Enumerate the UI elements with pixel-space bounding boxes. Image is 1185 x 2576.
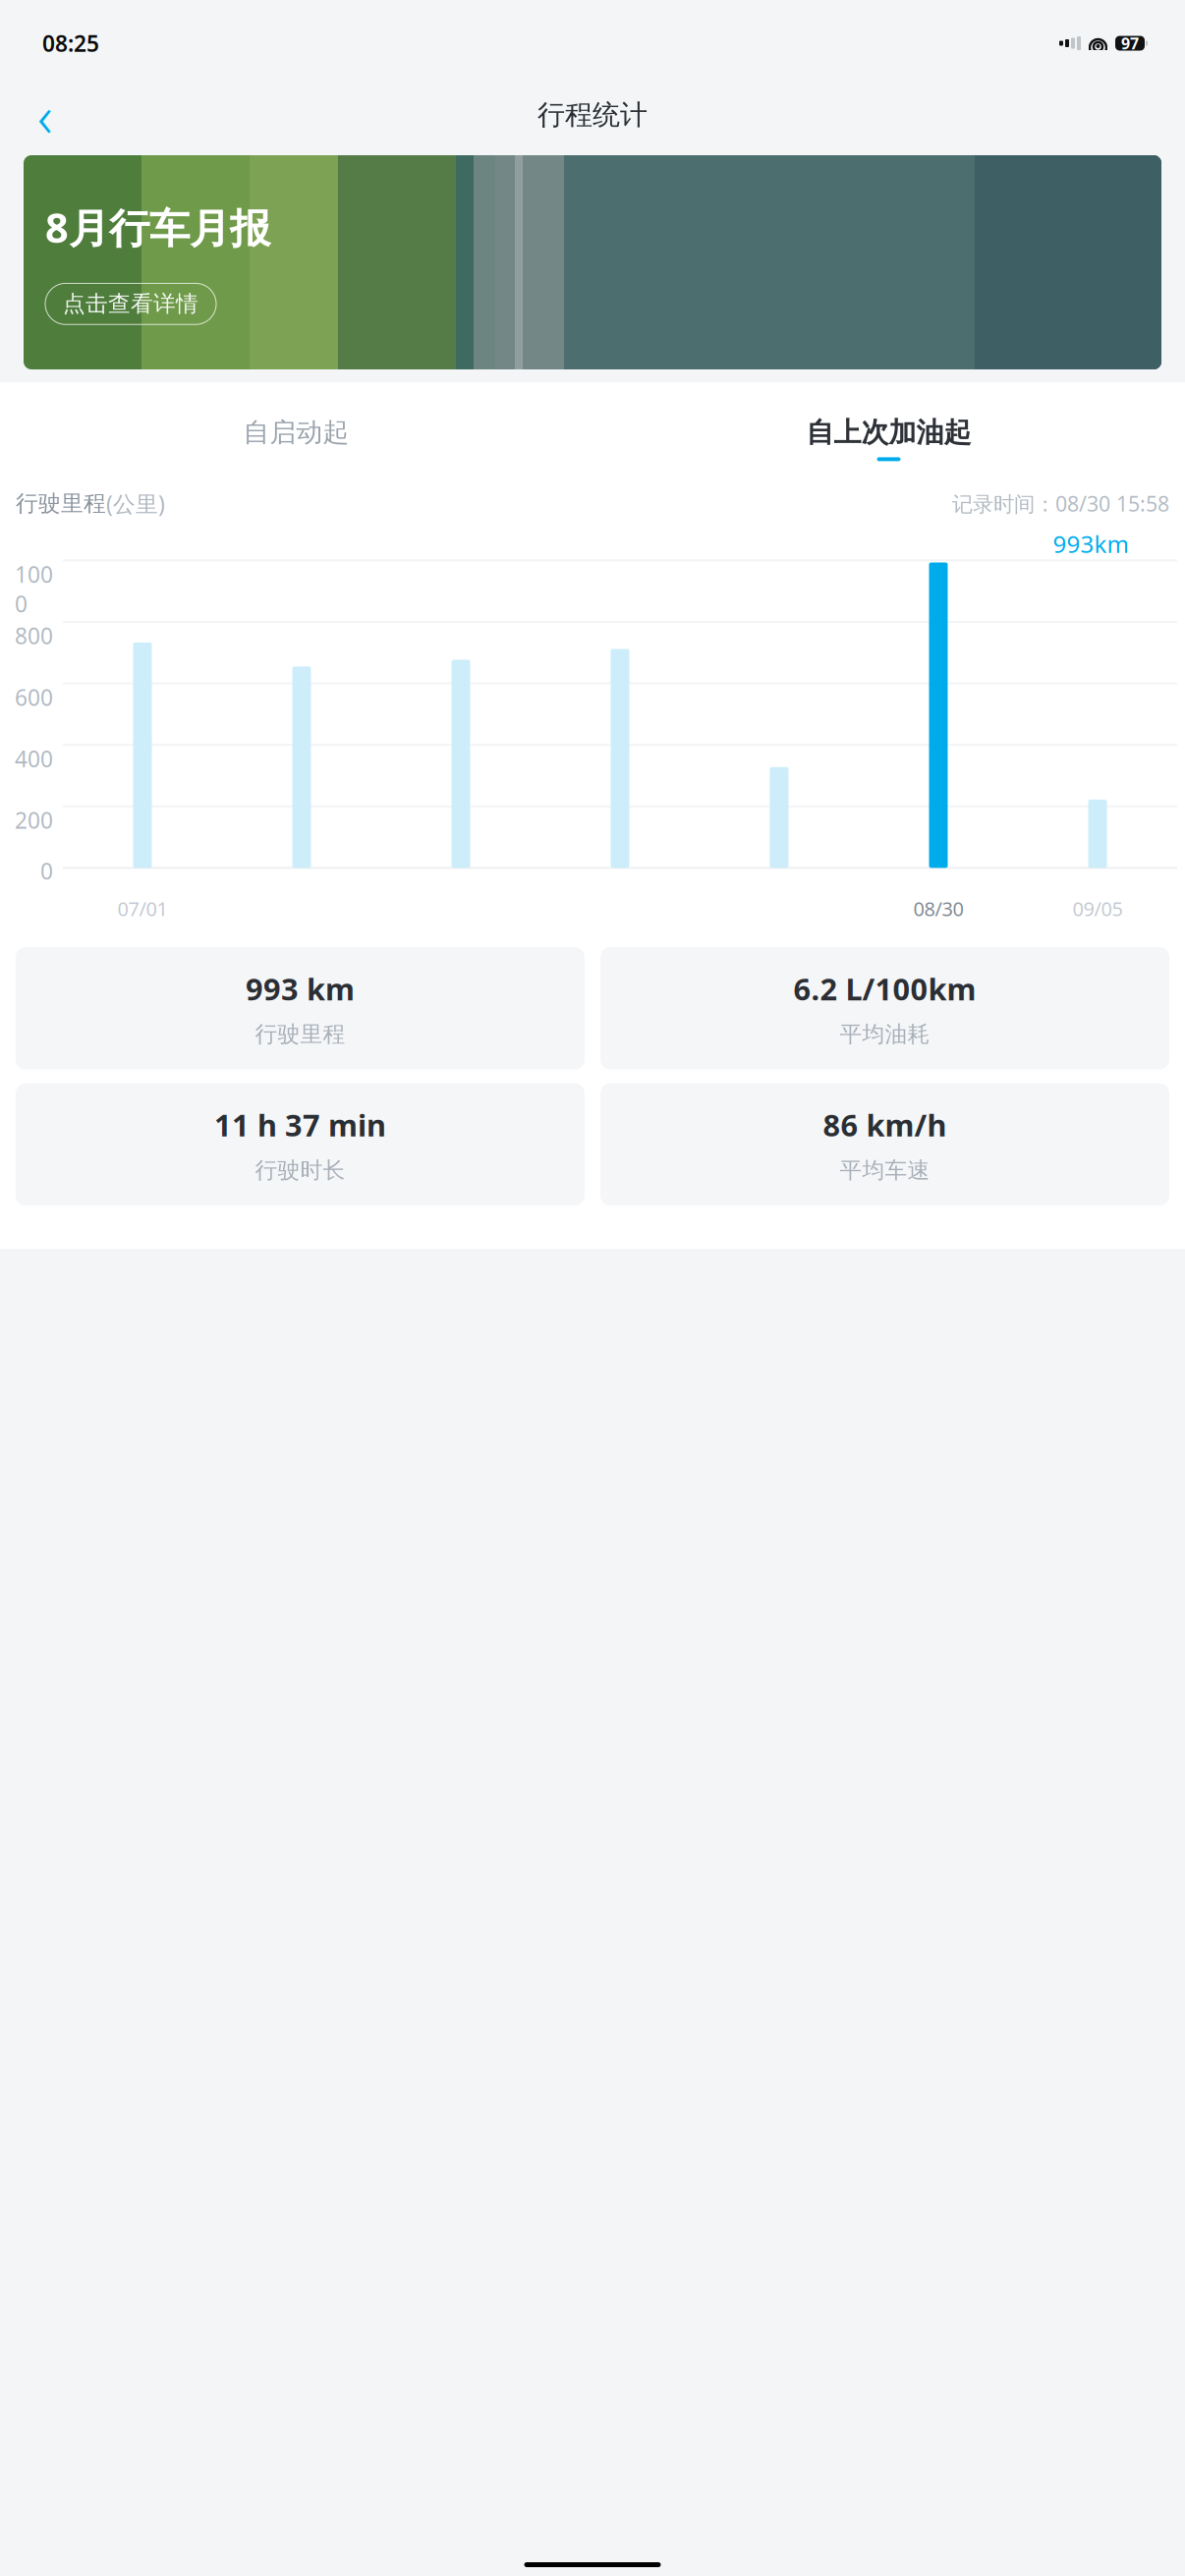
staticText: 600	[15, 682, 53, 712]
staticText: 400	[15, 744, 53, 773]
staticText: 8月行车月报	[45, 200, 270, 254]
button[interactable]: 自上次加油起	[592, 402, 1185, 475]
staticText: 行程统计	[537, 98, 648, 132]
staticText: 07/01	[117, 896, 168, 922]
staticText: (公里)	[106, 489, 165, 518]
staticText: 993km	[1053, 528, 1129, 559]
staticText: 行驶里程	[16, 490, 106, 517]
button[interactable]: 返回	[22, 91, 69, 139]
staticText: 200	[15, 805, 53, 835]
staticText: 行驶里程	[255, 1021, 345, 1048]
staticText: 0	[40, 856, 53, 886]
staticText: 平均油耗	[840, 1021, 930, 1048]
staticText: 97	[1121, 33, 1139, 54]
staticText: 09/05	[1072, 896, 1123, 922]
staticText: 08/30	[913, 896, 963, 922]
button[interactable]: 8月行车月报	[24, 155, 1161, 369]
staticText: 平均车速	[840, 1157, 930, 1184]
staticText: 08:25	[42, 28, 99, 58]
button[interactable]: 6.2 L/100km	[600, 947, 1169, 1070]
staticText: 点击查看详情	[63, 290, 198, 318]
staticText: 993 km	[246, 969, 355, 1009]
staticText: 6.2 L/100km	[793, 969, 976, 1009]
staticText: 自启动起	[243, 416, 349, 449]
button[interactable]: 11 h 37 min	[16, 1083, 585, 1206]
staticText: ‹	[37, 77, 53, 153]
staticText: 1000	[15, 559, 53, 619]
button[interactable]: 自启动起	[0, 403, 592, 474]
staticText: 11 h 37 min	[214, 1105, 386, 1145]
staticText: 记录时间：08/30 15:58	[952, 490, 1169, 517]
button[interactable]: 993 km	[16, 947, 585, 1070]
staticText: 行驶时长	[255, 1157, 345, 1184]
staticText: 自上次加油起	[806, 416, 971, 449]
button[interactable]: 86 km/h	[600, 1083, 1169, 1206]
staticText: 800	[15, 621, 53, 650]
staticText: 86 km/h	[823, 1105, 947, 1145]
